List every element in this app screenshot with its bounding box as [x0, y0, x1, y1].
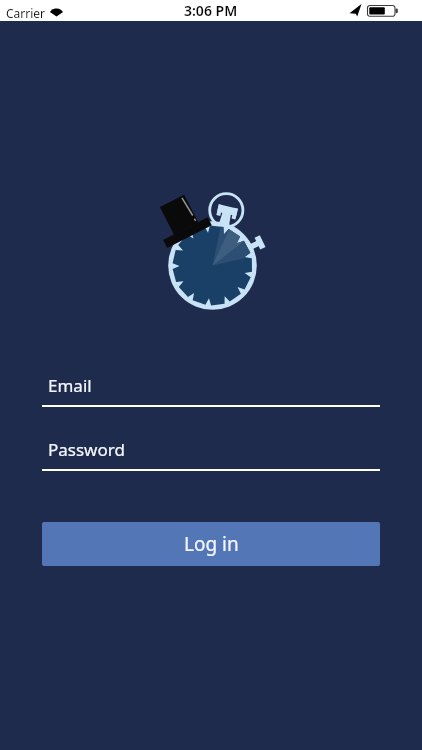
staticText: Log in — [184, 531, 239, 557]
button[interactable]: Email — [42, 370, 380, 407]
staticText: Password — [48, 438, 125, 461]
staticText: Carrier — [6, 5, 46, 21]
staticText: Email — [48, 374, 92, 397]
staticText: 3:06 PM — [184, 1, 238, 20]
button[interactable]: Log in — [42, 522, 380, 566]
button[interactable]: Password — [42, 434, 380, 471]
